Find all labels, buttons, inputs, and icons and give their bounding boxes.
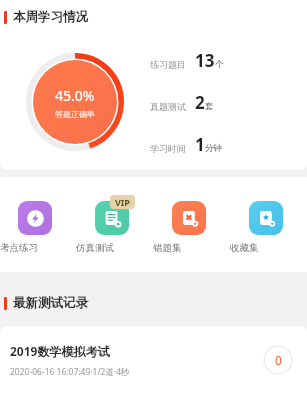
- staticText: 分钟: [205, 143, 222, 154]
- button[interactable]: 收藏集: [230, 195, 307, 254]
- staticText: 0: [275, 352, 282, 368]
- staticText: 真题测试: [150, 101, 186, 112]
- staticText: 2020-06-16 16:07:49·1/2道·4秒: [10, 366, 130, 378]
- staticText: 练习题目: [150, 59, 186, 70]
- staticText: VIP: [115, 196, 130, 208]
- staticText: 13: [195, 49, 215, 72]
- button[interactable]: 仿真测试: [76, 195, 153, 254]
- staticText: 答题正确率: [55, 109, 95, 119]
- staticText: 最新测试记录: [13, 295, 88, 311]
- other: 错题集: [172, 201, 206, 235]
- staticText: 本周学习情况: [13, 9, 88, 25]
- other: 收藏集: [249, 201, 283, 235]
- button[interactable]: 2019数学模拟考试: [0, 326, 307, 394]
- staticText: 2019数学模拟考试: [10, 343, 110, 359]
- staticText: 45.0%: [55, 86, 95, 105]
- other: 考点练习: [18, 201, 52, 235]
- button[interactable]: 考点练习: [0, 195, 76, 254]
- staticText: 个: [215, 59, 224, 70]
- staticText: 2: [195, 91, 205, 114]
- staticText: 收藏集: [230, 242, 307, 254]
- staticText: 套: [205, 101, 214, 112]
- button[interactable]: 错题集: [153, 195, 230, 254]
- staticText: 学习时间: [150, 143, 186, 154]
- staticText: 错题集: [153, 242, 230, 254]
- staticText: 仿真测试: [76, 242, 153, 254]
- staticText: 1: [195, 133, 205, 156]
- other: 仿真测试: [95, 201, 129, 235]
- staticText: 考点练习: [0, 242, 76, 254]
